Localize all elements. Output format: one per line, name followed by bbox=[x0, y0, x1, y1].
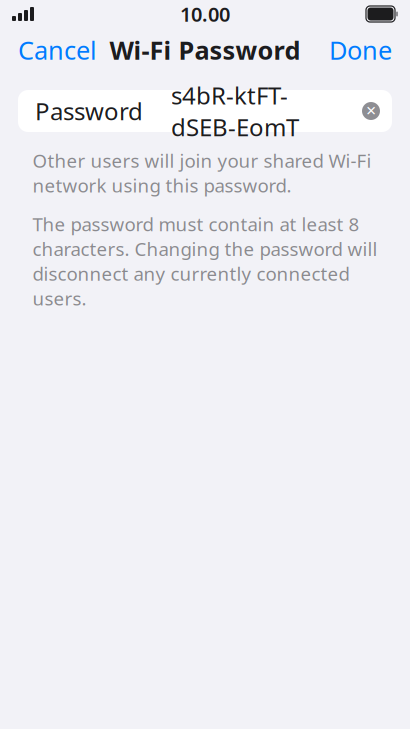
staticText: Password bbox=[35, 95, 143, 127]
staticText: ✕ bbox=[365, 103, 376, 118]
staticText: Other users will join your shared Wi-Fi … bbox=[32, 148, 371, 198]
staticText: Done bbox=[329, 33, 392, 67]
staticText: Wi-Fi Password bbox=[109, 33, 300, 67]
staticText: The password must contain at least 8 cha… bbox=[32, 212, 377, 311]
button[interactable]: Done bbox=[315, 25, 406, 75]
button[interactable]: Clear password bbox=[356, 96, 386, 126]
staticText: 10.00 bbox=[180, 1, 230, 27]
button[interactable]: Cancel bbox=[4, 25, 111, 75]
staticText: s4bR-ktFT-dSEB-EomT bbox=[171, 79, 299, 143]
staticText: Cancel bbox=[18, 33, 97, 67]
